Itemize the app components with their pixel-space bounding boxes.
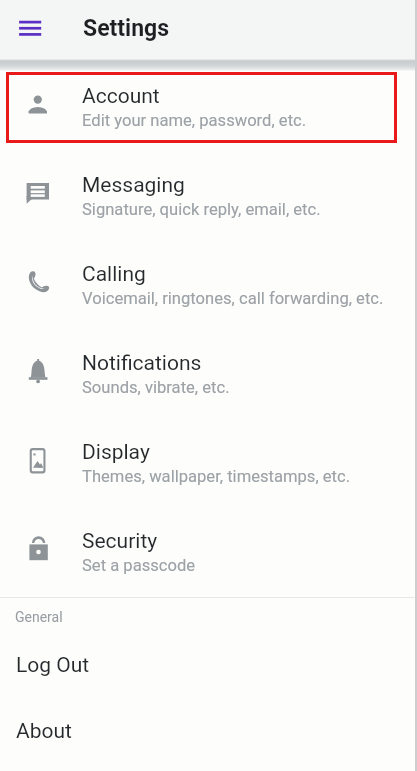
button[interactable]: Notifications [0, 341, 417, 430]
staticText: Display [82, 440, 150, 465]
staticText: Messaging [82, 173, 185, 198]
staticText: Voicemail, ringtones, call forwarding, e… [82, 289, 384, 308]
button[interactable]: Log Out [0, 649, 417, 683]
button[interactable]: Open navigation menu [10, 12, 48, 46]
staticText: Themes, wallpaper, timestamps, etc. [82, 467, 351, 486]
button[interactable]: Security [0, 519, 417, 608]
staticText: Notifications [82, 351, 202, 376]
staticText: Signature, quick reply, email, etc. [82, 200, 321, 219]
button[interactable]: Calling [0, 252, 417, 341]
staticText: Security [82, 529, 158, 554]
staticText: Edit your name, password, etc. [82, 111, 307, 130]
button[interactable]: About [0, 715, 417, 749]
staticText: About [16, 719, 72, 744]
staticText: Settings [83, 15, 170, 42]
staticText: Sounds, vibrate, etc. [82, 378, 230, 397]
staticText: Set a passcode [82, 556, 196, 575]
staticText: Log Out [16, 653, 90, 678]
button[interactable]: Display [0, 430, 417, 519]
button[interactable]: Account [0, 74, 417, 163]
button[interactable]: Messaging [0, 163, 417, 252]
staticText: General [15, 609, 63, 625]
staticText: Account [82, 84, 160, 109]
staticText: Calling [82, 262, 146, 287]
